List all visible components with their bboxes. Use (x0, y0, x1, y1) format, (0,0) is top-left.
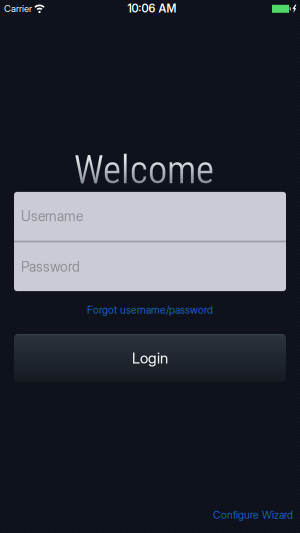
staticText: Username (21, 208, 83, 225)
staticText: 10:06 AM (127, 2, 176, 15)
staticText: Login (132, 349, 168, 367)
button[interactable]: Password (14, 242, 286, 291)
button[interactable]: Configure Wizard (213, 509, 293, 521)
staticText: Password (21, 258, 80, 275)
button[interactable]: Login (14, 334, 286, 382)
staticText: Forgot username/password (87, 304, 213, 316)
button[interactable]: Username (14, 192, 286, 241)
button[interactable]: Forgot username/password (87, 304, 213, 316)
staticText: Carrier (4, 3, 32, 14)
staticText: Configure Wizard (213, 509, 293, 521)
